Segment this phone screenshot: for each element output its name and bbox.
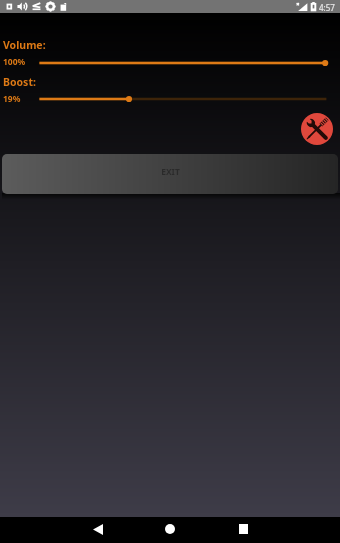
staticText: 4:57 (319, 2, 335, 13)
staticText: 19% (3, 93, 21, 105)
button[interactable]: Tools settings (301, 113, 333, 145)
staticText: Boost: (3, 75, 36, 89)
button[interactable]: 100% slider (35, 56, 331, 70)
button[interactable]: Back (78, 517, 118, 543)
button[interactable]: Recents (223, 517, 263, 543)
staticText: EXIT (161, 166, 180, 178)
button[interactable]: EXIT (2, 154, 338, 194)
button[interactable]: 19% slider (35, 92, 331, 106)
staticText: Volume: (3, 38, 46, 52)
staticText: 100% (3, 56, 26, 68)
button[interactable]: Home (150, 517, 190, 543)
